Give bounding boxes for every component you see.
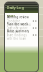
staticText: Write summary — [6, 29, 28, 33]
staticText: Share findings with the team — [6, 33, 26, 41]
button[interactable]: Morning review — [4, 17, 38, 24]
staticText: Draft next sprint priorities — [6, 26, 27, 34]
staticText: Check the overnight metrics — [6, 19, 30, 27]
button[interactable]: Write summary — [4, 31, 38, 38]
staticText: TODAY — [6, 14, 15, 17]
staticText: Morning review — [6, 15, 28, 19]
staticText: Daily Log — [6, 5, 24, 10]
staticText: Plan the week — [6, 22, 28, 26]
button[interactable]: Plan the week — [4, 24, 38, 31]
